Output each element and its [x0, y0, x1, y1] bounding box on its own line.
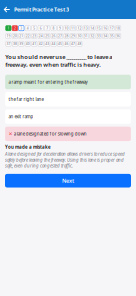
staticText: 9 [59, 26, 61, 30]
staticText: 2 [14, 26, 16, 30]
staticText: the far right lane [8, 96, 43, 102]
staticText: an exit ramp [8, 114, 33, 119]
button[interactable]: 12 [77, 26, 82, 31]
staticText: 14 [90, 26, 94, 30]
button[interactable]: 23 [31, 33, 37, 39]
staticText: a lane designated for slowing down [14, 131, 87, 137]
staticText: 41 [32, 42, 36, 46]
staticText: 24 [39, 34, 43, 38]
button[interactable]: 44 [51, 41, 56, 46]
button[interactable]: 3 [19, 26, 24, 31]
button[interactable]: 41 [31, 41, 37, 46]
button[interactable]: 34 [102, 33, 108, 39]
button[interactable]: 47 [70, 41, 76, 46]
staticText: Permit Practice Test 3 [14, 6, 69, 13]
staticText: 42 [39, 42, 43, 46]
button[interactable]: 11 [70, 26, 76, 31]
button[interactable]: 17 [109, 26, 114, 31]
button[interactable]: 1 [6, 26, 11, 31]
staticText: a ramp meant for entering the freeway [8, 79, 87, 85]
staticText: 10 [64, 26, 68, 30]
button[interactable]: 29 [70, 33, 76, 39]
button[interactable]: 25 [44, 33, 50, 39]
button[interactable]: 2 [12, 26, 18, 31]
staticText: 19 [6, 34, 10, 38]
button[interactable]: 35 [109, 33, 114, 39]
button[interactable]: 42 [38, 41, 43, 46]
button[interactable]: a ramp meant for entering the freeway [5, 75, 131, 89]
staticText: 38 [13, 42, 17, 46]
button[interactable]: 30 [77, 33, 82, 39]
staticText: 25 [45, 34, 49, 38]
button[interactable]: Back [0, 0, 14, 19]
button[interactable]: 19 [6, 33, 11, 39]
staticText: 6 [40, 26, 42, 30]
staticText: 11 [71, 26, 75, 30]
button[interactable]: 4 [25, 26, 31, 31]
staticText: 15 [97, 26, 101, 30]
button[interactable]: 26 [51, 33, 56, 39]
staticText: 17 [110, 26, 114, 30]
button[interactable]: 46 [64, 41, 69, 46]
button[interactable]: 31 [83, 33, 89, 39]
button[interactable]: 33 [96, 33, 101, 39]
staticText: 46 [64, 42, 68, 46]
button[interactable]: 22 [25, 33, 31, 39]
staticText: Next [62, 177, 74, 184]
staticText: 34 [103, 34, 107, 38]
button[interactable]: 18 [115, 26, 121, 31]
button[interactable]: Next [5, 174, 131, 187]
button[interactable]: 24 [38, 33, 43, 39]
staticText: 36 [116, 34, 120, 38]
staticText: 35 [110, 34, 114, 38]
button[interactable]: 5 [31, 26, 37, 31]
button[interactable]: 16 [102, 26, 108, 31]
button[interactable]: 40 [25, 41, 31, 46]
button[interactable]: 20 [12, 33, 18, 39]
staticText: 28 [64, 34, 68, 38]
staticText: 39 [19, 42, 23, 46]
button[interactable]: 45 [57, 41, 63, 46]
button[interactable]: 21 [19, 33, 24, 39]
staticText: 43 [45, 42, 49, 46]
staticText: 48 [77, 42, 81, 46]
button[interactable]: 43 [44, 41, 50, 46]
button[interactable]: 13 [83, 26, 89, 31]
button[interactable]: 37 [6, 41, 11, 46]
button[interactable]: 8 [51, 26, 56, 31]
button[interactable]: 6 [38, 26, 43, 31]
staticText: 1 [7, 26, 9, 30]
staticText: 23 [32, 34, 36, 38]
staticText: 7 [46, 26, 48, 30]
button[interactable]: 38 [12, 41, 18, 46]
button[interactable]: 36 [115, 33, 121, 39]
staticText: 18 [116, 26, 120, 30]
staticText: 4 [27, 26, 29, 30]
staticText: 31 [84, 34, 88, 38]
button[interactable]: 7 [44, 26, 50, 31]
button[interactable]: 15 [96, 26, 101, 31]
staticText: 22 [26, 34, 30, 38]
button[interactable]: ✕ [5, 127, 131, 141]
button[interactable]: 32 [90, 33, 95, 39]
button[interactable]: 48 [77, 41, 82, 46]
button[interactable]: 28 [64, 33, 69, 39]
staticText: 40 [26, 42, 30, 46]
button[interactable]: 39 [19, 41, 24, 46]
button[interactable]: 10 [64, 26, 69, 31]
button[interactable]: the far right lane [5, 92, 131, 106]
button[interactable]: 14 [90, 26, 95, 31]
staticText: 16 [103, 26, 107, 30]
staticText: 27 [58, 34, 62, 38]
staticText: 45 [58, 42, 62, 46]
button[interactable]: an exit ramp [5, 109, 131, 124]
staticText: A lane designed for deceleration allows … [5, 151, 125, 169]
staticText: 12 [77, 26, 81, 30]
staticText: You made a mistake [5, 144, 51, 150]
staticText: 13 [84, 26, 88, 30]
button[interactable]: 9 [57, 26, 63, 31]
staticText: 30 [77, 34, 81, 38]
button[interactable]: 27 [57, 33, 63, 39]
staticText: 8 [53, 26, 55, 30]
staticText: ✕ [8, 131, 12, 137]
